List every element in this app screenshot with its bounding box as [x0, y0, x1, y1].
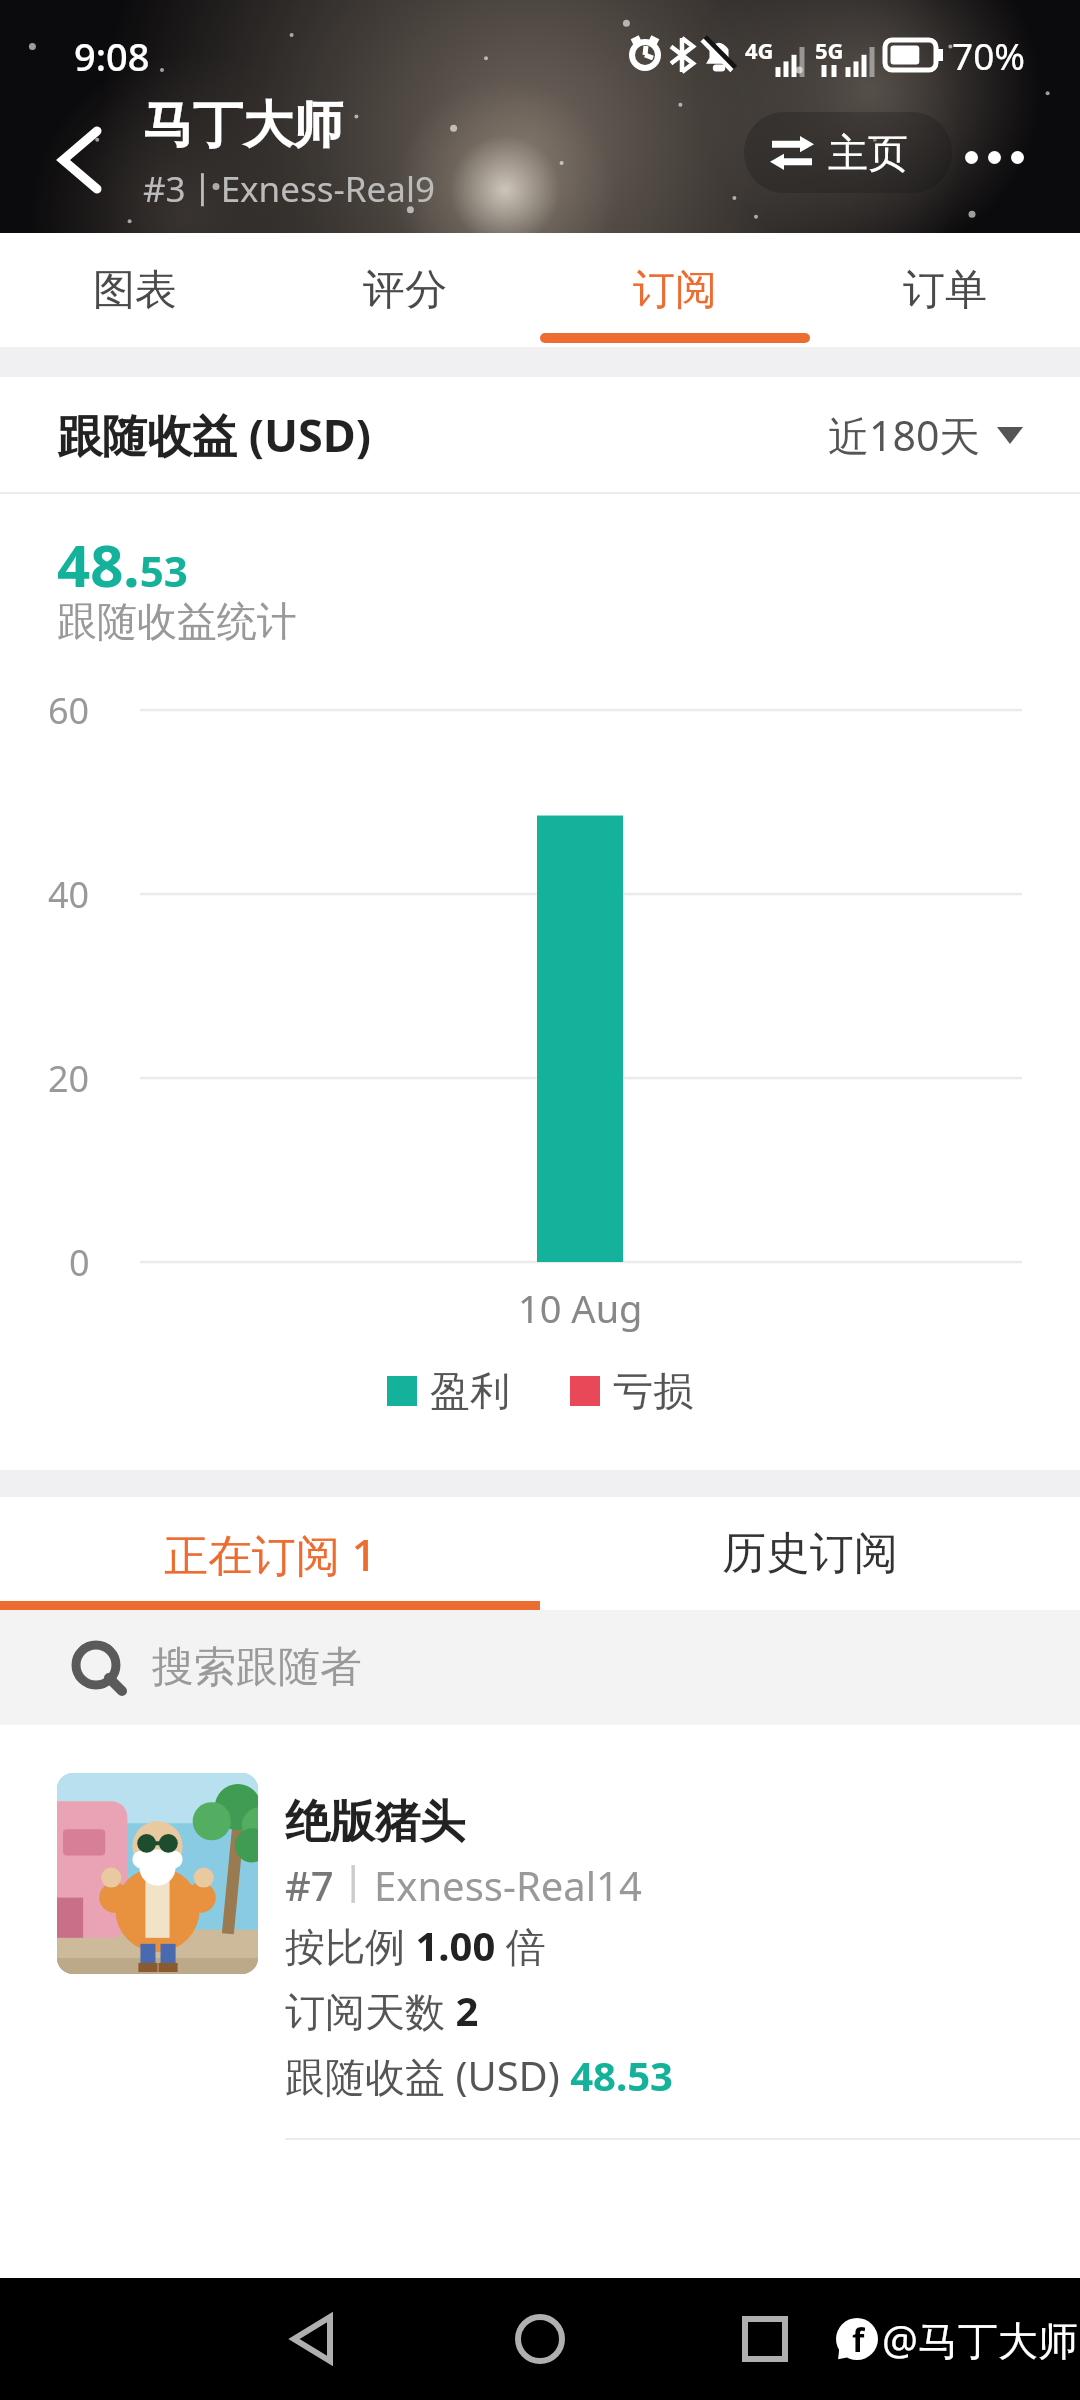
staticText: 历史订阅	[722, 1526, 898, 1581]
staticText: 正在订阅 1	[164, 1524, 377, 1584]
button[interactable]: 绝版猪头	[0, 1725, 1080, 1926]
button[interactable]: 历史订阅	[540, 1497, 1080, 1610]
staticText: 20	[48, 1054, 90, 1103]
staticText: 60	[48, 686, 90, 735]
staticText: 10 Aug	[518, 1282, 643, 1332]
staticText: f	[852, 2318, 865, 2360]
button[interactable]	[965, 135, 1055, 180]
staticText: 图表	[93, 264, 177, 317]
button[interactable]	[490, 2289, 590, 2389]
staticText: 搜索跟随者	[152, 1641, 362, 1694]
staticText: 0	[69, 1238, 90, 1287]
staticText: @马丁大师	[882, 2312, 1078, 2367]
staticText: 主页	[828, 128, 908, 178]
button[interactable]	[40, 120, 120, 200]
staticText: 按比例 1.00 倍	[285, 1918, 546, 1970]
staticText: 绝版猪头	[285, 1794, 465, 1851]
button[interactable]: 近180天	[828, 407, 1023, 463]
button[interactable]	[715, 2289, 815, 2389]
button[interactable]: 图表	[0, 233, 270, 347]
staticText: 48.53	[57, 525, 188, 604]
staticText: 亏损	[613, 1366, 693, 1416]
staticText: 订单	[903, 264, 987, 317]
staticText: 订阅天数 2	[285, 1983, 479, 2035]
staticText: 5G	[815, 35, 844, 65]
staticText: 跟随收益 (USD)	[57, 404, 371, 465]
staticText: 4G	[745, 35, 774, 65]
button[interactable]: 搜索跟随者	[0, 1610, 1080, 1725]
staticText: 丨	[334, 1859, 374, 1909]
staticText: 40	[48, 870, 90, 919]
button[interactable]: 订阅	[540, 233, 810, 347]
staticText: 盈利	[430, 1366, 510, 1416]
staticText: 跟随收益 (USD) 48.53	[285, 2048, 673, 2100]
button[interactable]: 正在订阅 1	[0, 1497, 540, 1610]
button[interactable]	[262, 2289, 362, 2389]
staticText: 70%	[952, 30, 1026, 80]
staticText: 9:08	[74, 30, 150, 80]
staticText: 订阅	[633, 264, 717, 317]
staticText: #7	[285, 1858, 334, 1910]
staticText: 跟随收益统计	[57, 596, 297, 646]
button[interactable]: 评分	[270, 233, 540, 347]
staticText: 评分	[363, 264, 447, 317]
staticText: 马丁大师	[143, 94, 343, 157]
staticText: 近180天	[828, 407, 981, 463]
button[interactable]: 订单	[810, 233, 1080, 347]
button[interactable]: 主页	[744, 112, 952, 193]
staticText: #3丨Exness-Real9	[143, 165, 435, 213]
staticText: Exness-Real14	[374, 1858, 642, 1910]
